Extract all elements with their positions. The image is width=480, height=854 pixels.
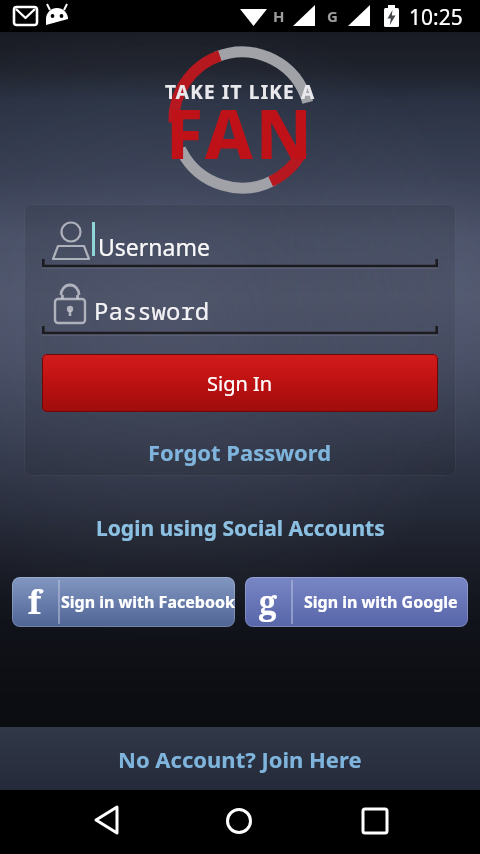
- button[interactable]: [330, 795, 420, 849]
- button[interactable]: f: [12, 577, 235, 627]
- staticText: No Account? Join Here: [118, 744, 362, 774]
- staticText: G: [327, 6, 338, 26]
- button[interactable]: Username: [98, 229, 428, 263]
- staticText: Sign In: [207, 370, 273, 397]
- staticText: Sign in with Google: [304, 591, 458, 613]
- staticText: Password: [94, 294, 210, 327]
- staticText: Username: [98, 231, 210, 262]
- staticText: g: [259, 580, 277, 624]
- button[interactable]: Sign In: [42, 354, 438, 412]
- staticText: f: [28, 580, 42, 624]
- button[interactable]: No Account? Join Here: [0, 727, 480, 790]
- staticText: TAKE IT LIKE A: [165, 79, 316, 105]
- button[interactable]: Forgot Password: [148, 437, 332, 467]
- button[interactable]: [75, 795, 165, 849]
- staticText: FAN: [166, 86, 315, 179]
- staticText: H: [273, 6, 285, 26]
- staticText: Sign in with Facebook: [61, 591, 235, 613]
- button[interactable]: [195, 795, 285, 849]
- button[interactable]: g: [245, 577, 468, 627]
- staticText: Forgot Password: [148, 437, 332, 467]
- staticText: Login using Social Accounts: [96, 514, 385, 543]
- button[interactable]: Password: [94, 293, 428, 327]
- staticText: 10:25: [409, 3, 463, 32]
